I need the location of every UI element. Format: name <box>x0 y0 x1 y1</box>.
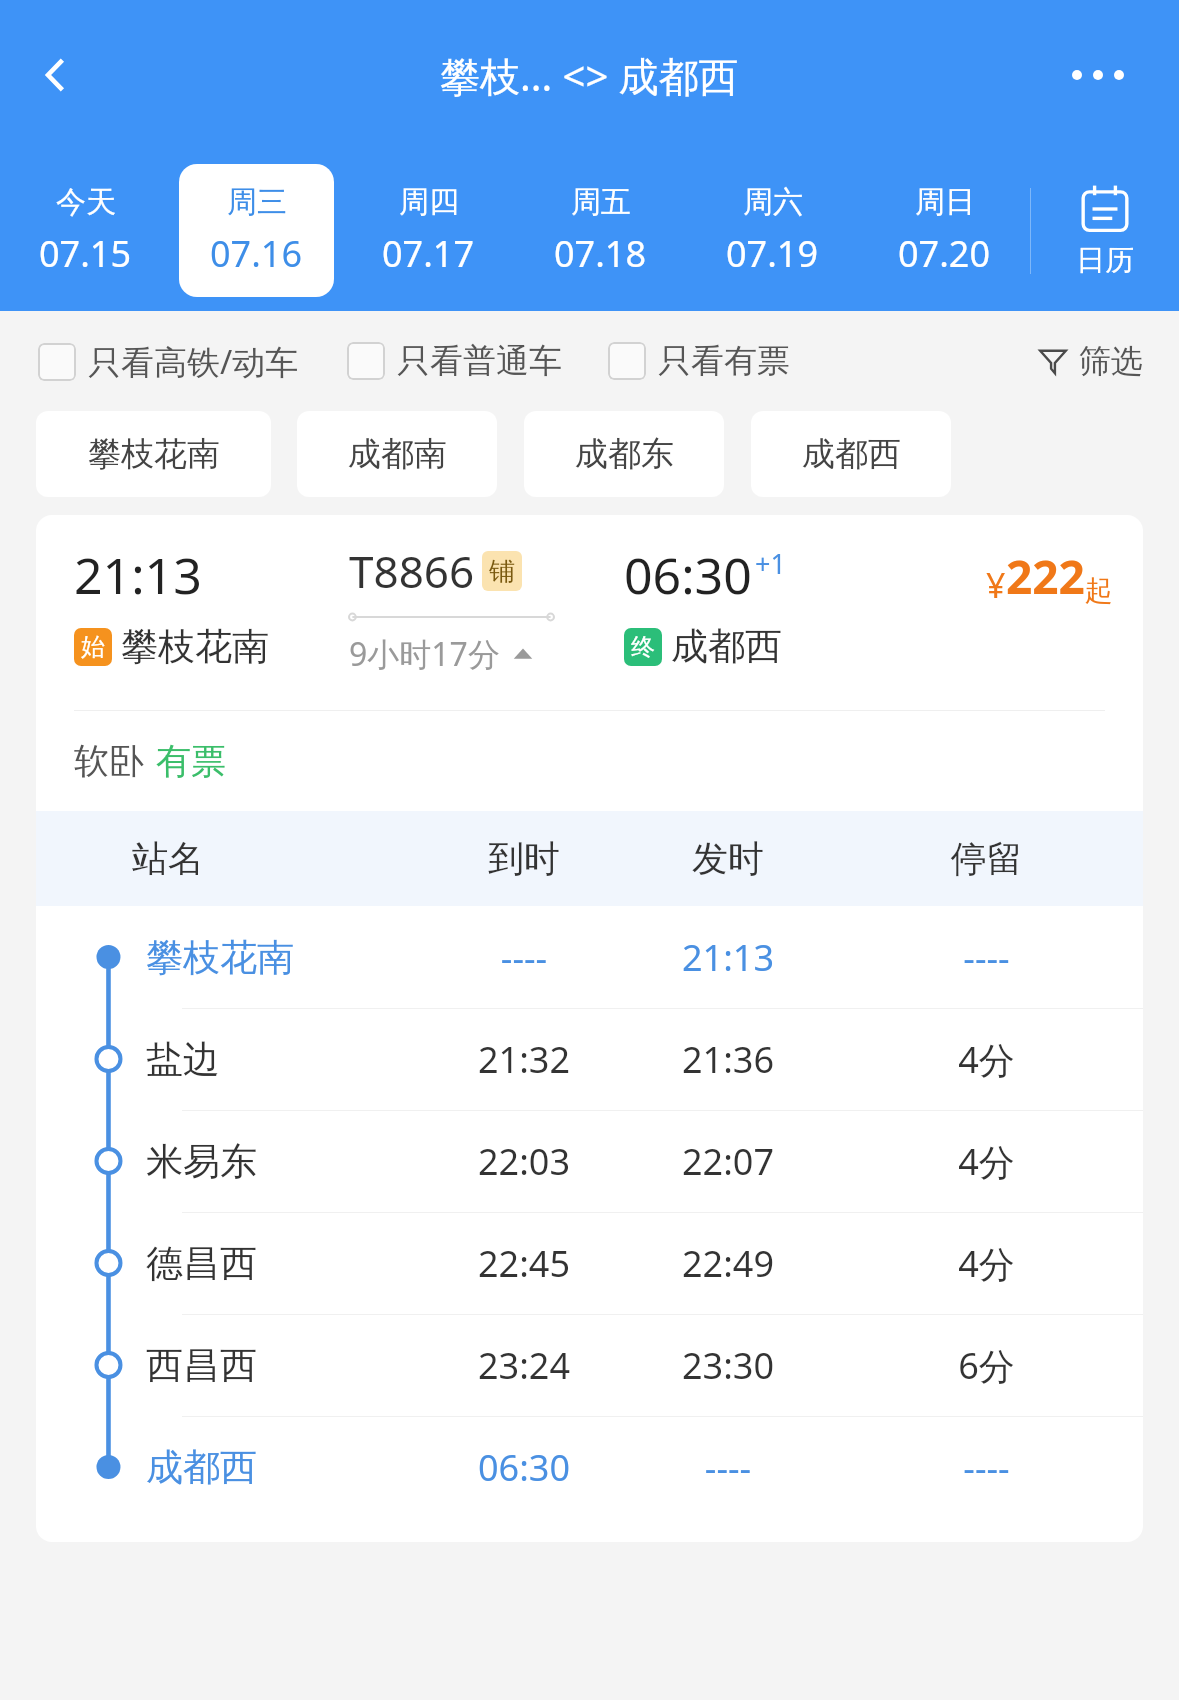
button[interactable]: 只看高铁/动车 <box>38 339 299 384</box>
staticText: 21:13 <box>626 933 830 982</box>
staticText: 07.16 <box>210 229 303 278</box>
button[interactable]: 成都西 <box>751 411 951 497</box>
staticText: 攀枝花南 <box>88 433 220 475</box>
button[interactable]: 盐边 <box>36 1008 1143 1110</box>
staticText: 攀枝花南 <box>121 623 269 670</box>
staticText: ---- <box>422 933 626 982</box>
staticText: 日历 <box>1076 242 1134 279</box>
button[interactable]: 攀枝花南 <box>36 411 271 497</box>
staticText: 4分 <box>830 1239 1143 1288</box>
staticText: 06:30 <box>624 541 752 609</box>
staticText: 站名 <box>132 836 422 881</box>
button[interactable]: 周五 <box>522 164 678 297</box>
staticText: 起 <box>1085 573 1113 608</box>
staticText: 成都东 <box>575 433 674 475</box>
staticText: T8866 <box>349 541 475 601</box>
staticText: 德昌西 <box>146 1240 422 1287</box>
staticText: 9小时17分 <box>349 632 500 676</box>
staticText: 攀枝花南 <box>146 934 422 981</box>
button[interactable]: 软卧 <box>36 711 1143 811</box>
button[interactable]: Back <box>20 39 92 111</box>
staticText: 成都西 <box>146 1444 422 1491</box>
staticText: 盐边 <box>146 1036 422 1083</box>
staticText: 只看有票 <box>658 340 790 382</box>
staticText: ---- <box>830 933 1143 982</box>
staticText: 周三 <box>227 183 287 221</box>
button[interactable]: 德昌西 <box>36 1212 1143 1314</box>
staticText: 西昌西 <box>146 1342 422 1389</box>
staticText: 21:13 <box>74 541 202 609</box>
staticText: 22:49 <box>626 1239 830 1288</box>
staticText: 今天 <box>56 183 116 221</box>
button[interactable]: 只看有票 <box>608 340 790 382</box>
button[interactable]: 米易东 <box>36 1110 1143 1212</box>
staticText: 周五 <box>571 183 631 221</box>
staticText: 07.18 <box>554 229 647 278</box>
staticText: 软卧 <box>74 739 144 783</box>
staticText: 成都南 <box>348 433 447 475</box>
staticText: 成都西 <box>671 623 782 670</box>
button[interactable]: 周日 <box>866 164 1022 297</box>
button[interactable]: 周四 <box>350 164 506 297</box>
staticText: 攀枝... <> 成都西 <box>440 48 739 103</box>
staticText: 停留 <box>830 836 1143 881</box>
staticText: 发时 <box>626 836 830 881</box>
staticText: 终 <box>631 632 655 662</box>
staticText: 4分 <box>830 1137 1143 1186</box>
staticText: 周四 <box>399 183 459 221</box>
button[interactable]: 筛选 <box>1031 333 1149 389</box>
button[interactable]: 成都西 <box>36 1416 1143 1518</box>
staticText: 始 <box>81 632 105 662</box>
staticText: +1 <box>755 545 786 582</box>
staticText: 筛选 <box>1079 341 1143 381</box>
staticText: 成都西 <box>802 433 901 475</box>
staticText: 4分 <box>830 1035 1143 1084</box>
staticText: 只看高铁/动车 <box>88 339 299 384</box>
button[interactable]: 西昌西 <box>36 1314 1143 1416</box>
button[interactable]: More options <box>1053 40 1143 110</box>
staticText: 07.19 <box>726 229 819 278</box>
staticText: 6分 <box>830 1341 1143 1390</box>
button[interactable]: 成都南 <box>297 411 497 497</box>
staticText: 21:36 <box>626 1035 830 1084</box>
button[interactable]: 今天 <box>8 164 163 297</box>
staticText: 07.20 <box>898 229 991 278</box>
staticText: 米易东 <box>146 1138 422 1185</box>
button[interactable]: 21:13 <box>36 515 1143 710</box>
staticText: 06:30 <box>422 1443 626 1492</box>
staticText: 23:30 <box>626 1341 830 1390</box>
button[interactable]: 周六 <box>694 164 850 297</box>
button[interactable]: 攀枝花南 <box>36 906 1143 1008</box>
staticText: 周日 <box>915 183 975 221</box>
staticText: 23:24 <box>422 1341 626 1390</box>
staticText: 铺 <box>489 555 515 588</box>
button[interactable]: 周三 <box>179 164 334 297</box>
staticText: 07.17 <box>382 229 475 278</box>
staticText: 只看普通车 <box>397 340 562 382</box>
staticText: 222 <box>1006 545 1085 608</box>
staticText: 有票 <box>156 739 226 783</box>
staticText: ---- <box>830 1443 1143 1492</box>
staticText: 22:03 <box>422 1137 626 1186</box>
staticText: 22:45 <box>422 1239 626 1288</box>
staticText: 22:07 <box>626 1137 830 1186</box>
staticText: 21:32 <box>422 1035 626 1084</box>
staticText: ¥ <box>986 562 1006 608</box>
button[interactable]: 只看普通车 <box>347 340 562 382</box>
staticText: 到时 <box>422 836 626 881</box>
staticText: ---- <box>626 1443 830 1492</box>
staticText: 周六 <box>743 183 803 221</box>
button[interactable]: 日历 <box>1031 150 1179 311</box>
staticText: 07.15 <box>39 229 132 278</box>
button[interactable]: 成都东 <box>524 411 724 497</box>
